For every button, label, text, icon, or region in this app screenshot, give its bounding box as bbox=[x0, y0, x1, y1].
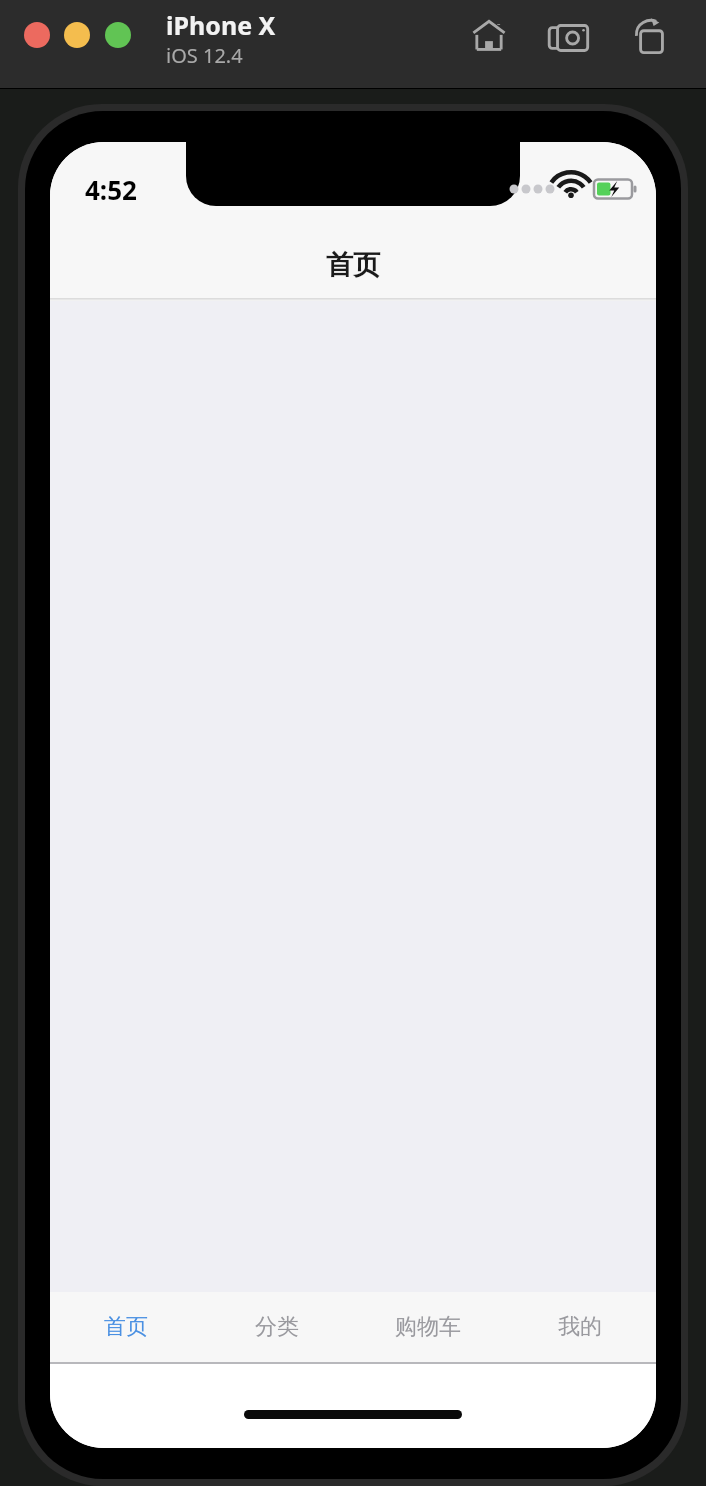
staticText: iPhone X bbox=[166, 8, 276, 42]
staticText: 我的 bbox=[558, 1313, 602, 1341]
button[interactable]: Screenshot bbox=[544, 12, 596, 64]
staticText: 分类 bbox=[255, 1313, 299, 1341]
staticText: 4:52 bbox=[85, 172, 137, 207]
staticText: iOS 12.4 bbox=[166, 42, 243, 69]
staticText: 首页 bbox=[104, 1313, 148, 1341]
button[interactable]: Rotate bbox=[625, 12, 677, 64]
button[interactable]: Home bbox=[463, 12, 515, 64]
button[interactable]: 我的 bbox=[504, 1292, 656, 1362]
staticText: 首页 bbox=[326, 248, 380, 282]
button[interactable]: 首页 bbox=[50, 1292, 201, 1362]
button[interactable]: 购物车 bbox=[352, 1292, 504, 1362]
staticText: 购物车 bbox=[395, 1313, 461, 1341]
button[interactable]: 分类 bbox=[201, 1292, 352, 1362]
